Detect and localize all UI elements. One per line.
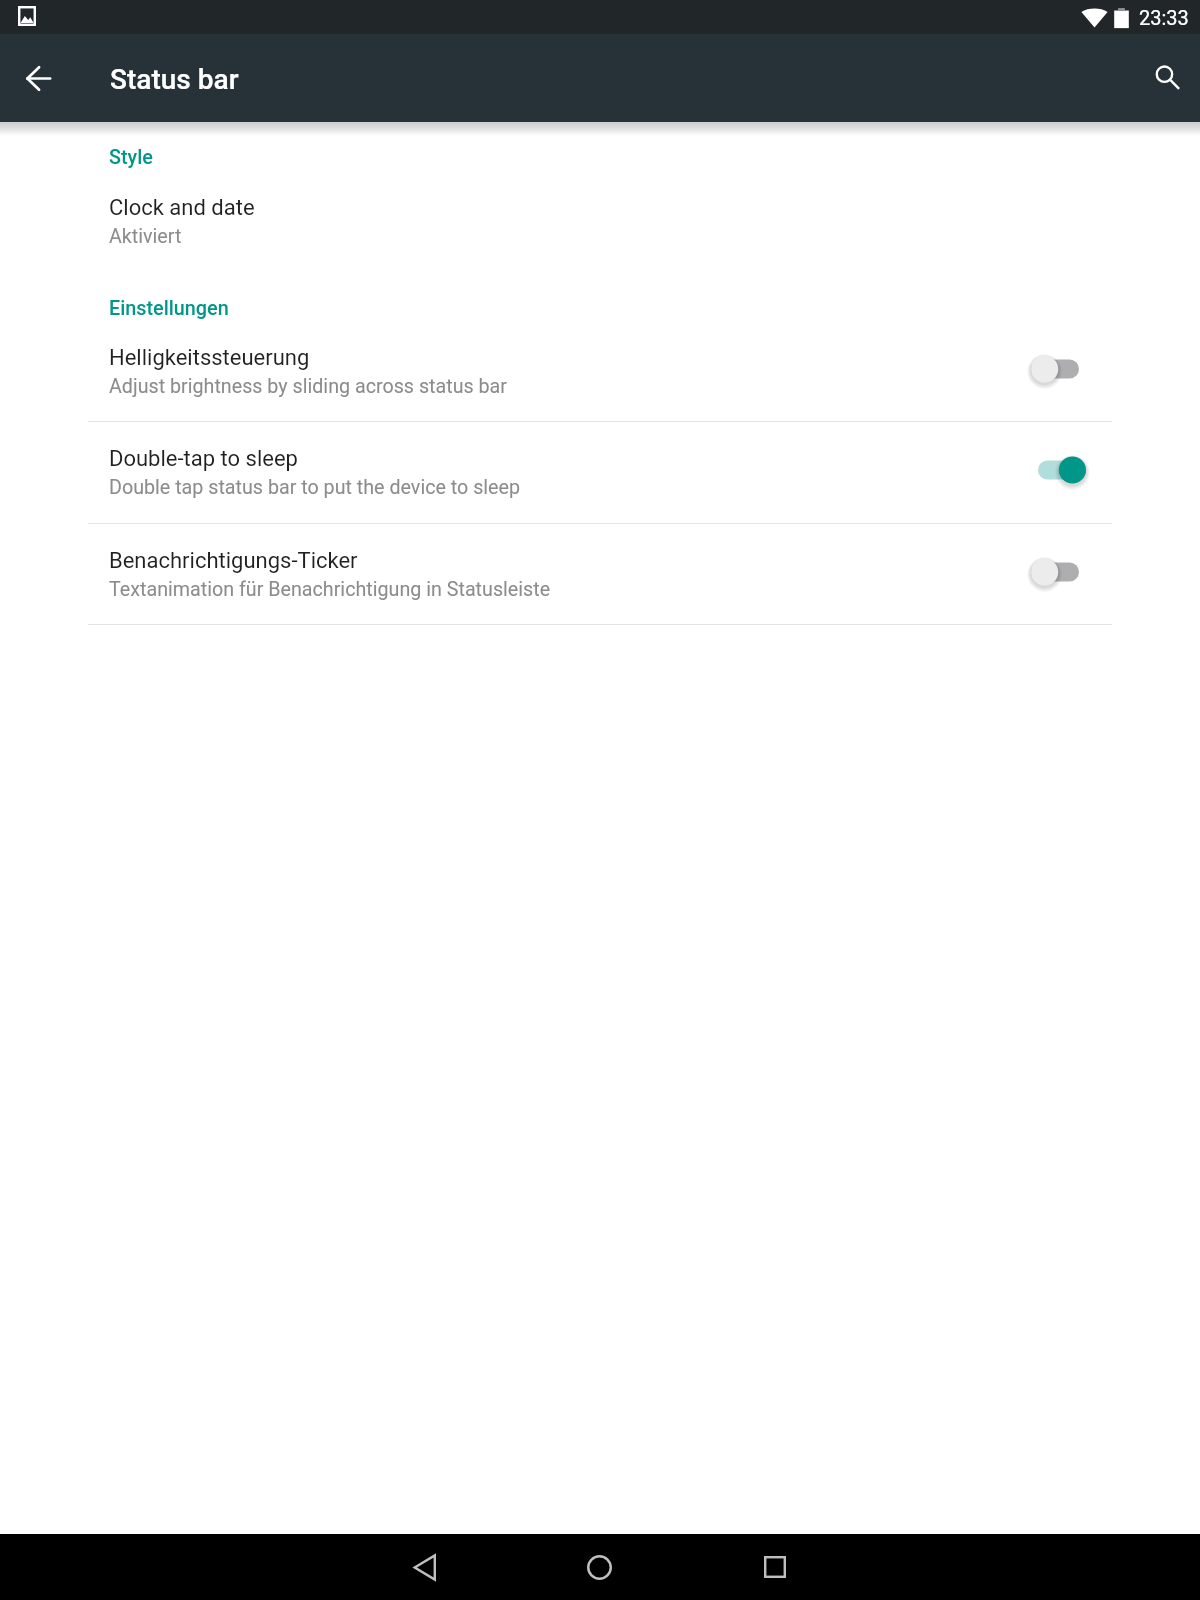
button[interactable]: Search — [1112, 34, 1200, 122]
button[interactable]: Double-tap to sleep — [0, 421, 1200, 523]
button[interactable]: Home — [554, 1534, 645, 1600]
button[interactable]: Disabled — [1017, 537, 1101, 607]
button[interactable]: Navigate up — [0, 34, 83, 122]
staticText: Style — [109, 146, 153, 169]
staticText: Status bar — [110, 63, 239, 96]
button[interactable]: Benachrichtigungs-Ticker — [0, 523, 1200, 625]
button[interactable]: Clock and date — [0, 169, 1200, 271]
button[interactable]: Helligkeitssteuerung — [0, 320, 1200, 422]
staticText: Helligkeitssteuerung — [109, 345, 310, 371]
staticText: Textanimation für Benachrichtigung in St… — [109, 578, 551, 601]
button[interactable]: Recent apps — [729, 1534, 820, 1600]
staticText: 23:33 — [1139, 6, 1189, 29]
staticText: Double-tap to sleep — [109, 446, 298, 472]
staticText: Einstellungen — [109, 297, 229, 320]
staticText: Aktiviert — [109, 225, 182, 248]
staticText: Benachrichtigungs-Ticker — [109, 548, 358, 574]
staticText: Double tap status bar to put the device … — [109, 476, 521, 499]
staticText: Adjust brightness by sliding across stat… — [109, 375, 507, 398]
button[interactable]: Back — [379, 1534, 470, 1600]
staticText: Clock and date — [109, 195, 255, 221]
button[interactable]: Enabled — [1017, 435, 1101, 505]
button[interactable]: Disabled — [1017, 334, 1101, 404]
